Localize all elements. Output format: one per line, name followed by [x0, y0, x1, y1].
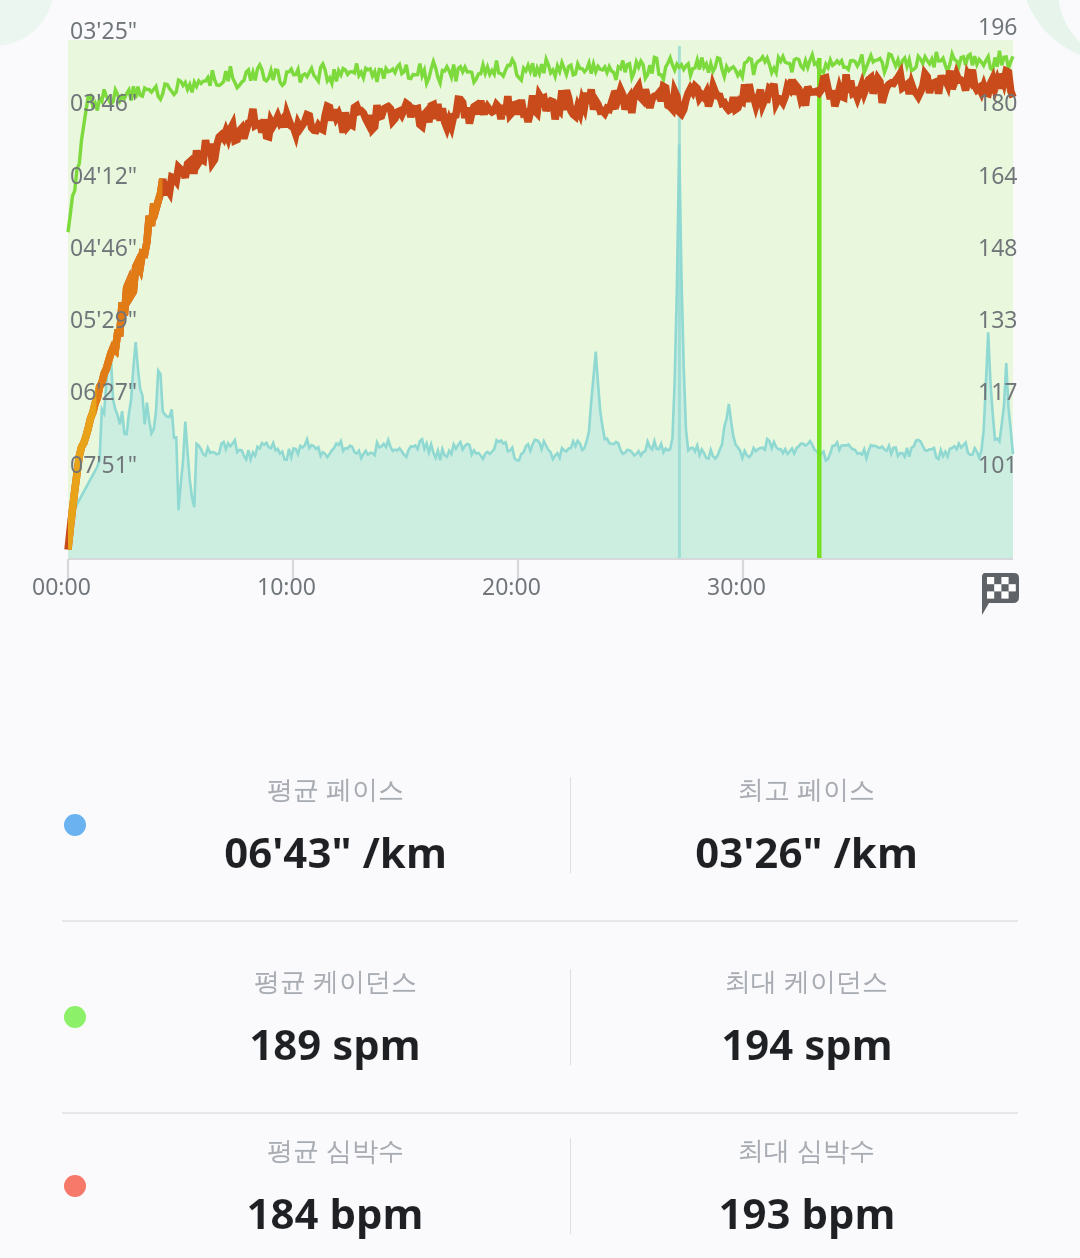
staticText: 평균 케이던스 [254, 963, 417, 999]
staticText: 196 [978, 10, 1018, 41]
staticText: 06'27" [70, 375, 138, 406]
staticText: 133 [978, 303, 1018, 334]
staticText: 05'29" [70, 303, 138, 334]
staticText: 07'51" [70, 448, 138, 479]
staticText: 평균 심박수 [267, 1132, 404, 1168]
staticText: 평균 페이스 [267, 771, 404, 807]
staticText: 10:00 [257, 570, 316, 601]
staticText: 193 bpm [718, 1184, 896, 1241]
staticText: 최대 심박수 [738, 1132, 875, 1168]
staticText: 30:00 [707, 570, 766, 601]
staticText: 최대 케이던스 [725, 963, 888, 999]
staticText: 184 bpm [246, 1184, 424, 1241]
staticText: 04'46" [70, 231, 138, 262]
staticText: 101 [978, 448, 1018, 479]
button[interactable]: 평균 케이던스 [0, 922, 1080, 1112]
staticText: 04'12" [70, 159, 138, 190]
staticText: 189 spm [249, 1015, 421, 1072]
staticText: 최고 페이스 [738, 771, 875, 807]
staticText: 03'26" /km [695, 823, 918, 880]
staticText: 03'46" [70, 86, 138, 117]
staticText: 194 spm [721, 1015, 893, 1072]
staticText: 180 [978, 86, 1018, 117]
staticText: 164 [978, 159, 1018, 190]
button[interactable]: 평균 페이스 [0, 730, 1080, 920]
staticText: 148 [978, 231, 1018, 262]
staticText: 03'25" [70, 14, 138, 45]
button[interactable]: 평균 심박수 [0, 1114, 1080, 1258]
staticText: 117 [978, 375, 1018, 406]
staticText: 20:00 [482, 570, 541, 601]
staticText: 06'43" /km [224, 823, 447, 880]
staticText: 00:00 [32, 570, 91, 601]
